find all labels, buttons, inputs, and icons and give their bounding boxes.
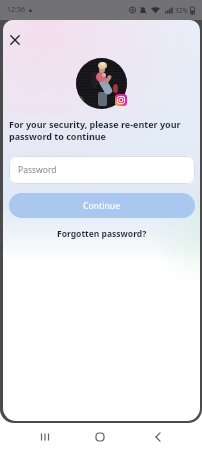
staticText: Forgotten password?	[57, 228, 147, 240]
button[interactable]	[36, 428, 54, 446]
button[interactable]	[91, 428, 109, 446]
staticText: Password	[18, 164, 57, 176]
staticText: 32%	[175, 6, 188, 15]
button[interactable]	[149, 428, 167, 446]
button[interactable]: Forgotten password?	[3, 226, 200, 242]
staticText: 12:36	[7, 5, 25, 15]
button[interactable]	[8, 33, 22, 47]
staticText: Continue	[83, 200, 121, 212]
staticText: For your security, please re-enter your …	[9, 118, 181, 143]
button[interactable]: Password	[9, 156, 195, 184]
button[interactable]: Continue	[9, 193, 195, 218]
